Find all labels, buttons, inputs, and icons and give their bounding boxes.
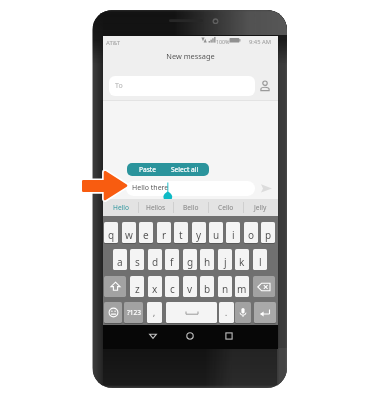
- staticText: d: [152, 255, 159, 269]
- button[interactable]: p: [261, 222, 275, 243]
- staticText: Hellos: [146, 203, 166, 212]
- button[interactable]: m: [235, 276, 249, 297]
- button[interactable]: [126, 181, 255, 196]
- staticText: Paste: [139, 165, 156, 174]
- button[interactable]: Send: [259, 181, 274, 196]
- button[interactable]: u: [209, 222, 223, 243]
- staticText: 9:45 AM: [249, 38, 271, 46]
- button[interactable]: ,: [147, 302, 162, 323]
- staticText: n: [222, 282, 229, 296]
- button[interactable]: q: [104, 222, 118, 243]
- button[interactable]: Bello: [173, 199, 208, 216]
- button[interactable]: z: [130, 276, 144, 297]
- staticText: Select all: [171, 165, 199, 174]
- staticText: w: [125, 228, 133, 242]
- button[interactable]: x: [148, 276, 162, 297]
- button[interactable]: Hello: [103, 199, 138, 216]
- staticText: j: [224, 255, 227, 269]
- button[interactable]: d: [148, 249, 162, 270]
- button[interactable]: i: [226, 222, 240, 243]
- button[interactable]: w: [122, 222, 136, 243]
- staticText: h: [204, 255, 211, 269]
- button[interactable]: b: [200, 276, 214, 297]
- button[interactable]: [104, 302, 122, 323]
- button[interactable]: [253, 276, 275, 297]
- button[interactable]: o: [244, 222, 258, 243]
- staticText: k: [239, 255, 245, 269]
- button[interactable]: Recents: [221, 328, 237, 344]
- staticText: p: [265, 228, 272, 242]
- staticText: AT&T: [106, 39, 120, 47]
- button[interactable]: Home: [182, 328, 198, 344]
- staticText: f: [170, 255, 174, 269]
- staticText: y: [196, 228, 202, 242]
- button[interactable]: t: [174, 222, 188, 243]
- staticText: New message: [166, 51, 215, 61]
- button[interactable]: [109, 76, 255, 96]
- staticText: v: [187, 282, 193, 296]
- button[interactable]: k: [235, 249, 249, 270]
- staticText: Cello: [218, 203, 234, 212]
- button[interactable]: g: [183, 249, 197, 270]
- button[interactable]: [254, 302, 276, 323]
- staticText: Hello there: [132, 183, 169, 193]
- staticText: u: [213, 228, 220, 242]
- button[interactable]: j: [218, 249, 232, 270]
- staticText: x: [152, 282, 158, 296]
- button[interactable]: Back: [145, 328, 161, 344]
- staticText: a: [117, 255, 123, 269]
- button[interactable]: Jelly: [243, 199, 278, 216]
- staticText: Hello: [113, 203, 129, 212]
- staticText: To: [115, 81, 123, 91]
- button[interactable]: c: [165, 276, 179, 297]
- staticText: i: [232, 228, 235, 242]
- button[interactable]: Select all: [167, 163, 203, 176]
- button[interactable]: l: [253, 249, 267, 270]
- button[interactable]: .: [219, 302, 234, 323]
- button[interactable]: f: [165, 249, 179, 270]
- button[interactable]: ?123: [124, 302, 143, 323]
- button[interactable]: [104, 276, 126, 297]
- button[interactable]: [235, 302, 251, 323]
- button[interactable]: s: [130, 249, 144, 270]
- staticText: z: [135, 282, 140, 296]
- button[interactable]: a: [113, 249, 127, 270]
- button[interactable]: h: [200, 249, 214, 270]
- button[interactable]: n: [218, 276, 232, 297]
- staticText: s: [135, 255, 140, 269]
- button[interactable]: r: [157, 222, 171, 243]
- button[interactable]: v: [183, 276, 197, 297]
- staticText: g: [187, 255, 194, 269]
- button[interactable]: Paste: [127, 163, 167, 176]
- staticText: ?123: [127, 308, 141, 317]
- button[interactable]: y: [192, 222, 206, 243]
- staticText: ,: [153, 307, 156, 318]
- staticText: e: [143, 228, 149, 242]
- staticText: Bello: [183, 203, 199, 212]
- staticText: t: [179, 228, 183, 242]
- button[interactable]: [166, 302, 217, 323]
- staticText: m: [237, 282, 247, 296]
- staticText: o: [248, 228, 255, 242]
- staticText: q: [108, 228, 115, 242]
- staticText: l: [259, 255, 262, 269]
- staticText: 100%: [216, 38, 230, 45]
- button[interactable]: Hellos: [138, 199, 173, 216]
- staticText: Jelly: [254, 203, 267, 212]
- staticText: c: [170, 282, 175, 296]
- staticText: .: [225, 307, 228, 318]
- staticText: r: [162, 228, 167, 242]
- button[interactable]: e: [139, 222, 153, 243]
- button[interactable]: Choose contact: [260, 80, 270, 92]
- button[interactable]: Cello: [208, 199, 243, 216]
- staticText: b: [204, 282, 211, 296]
